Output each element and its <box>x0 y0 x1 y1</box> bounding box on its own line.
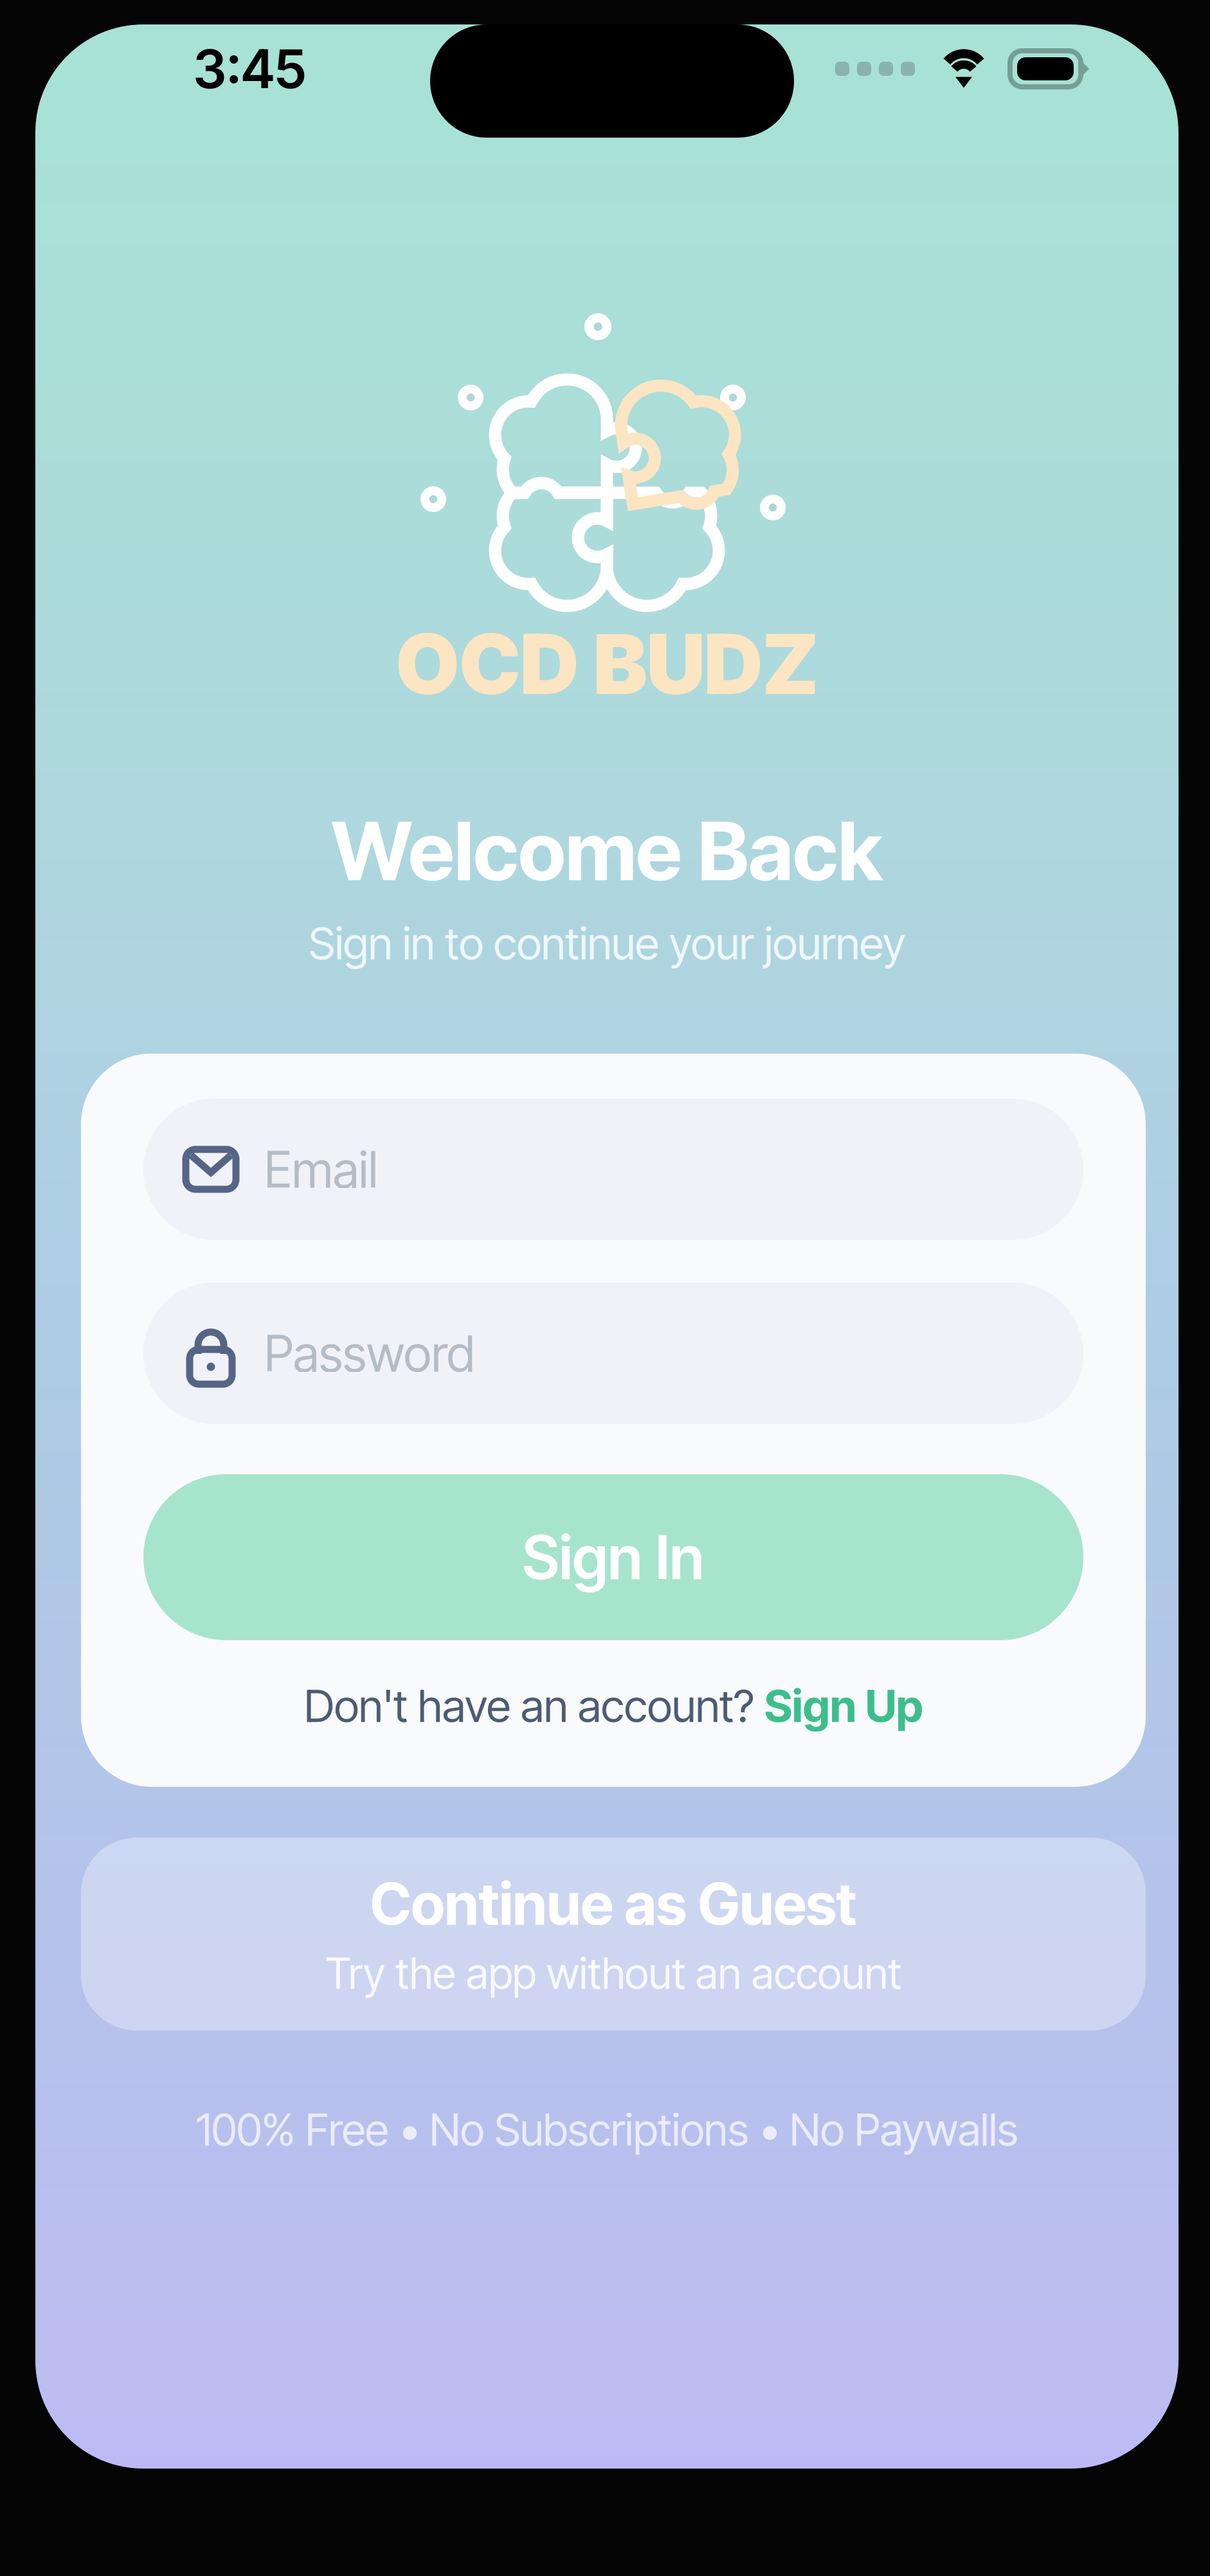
staticText: Continue as Guest <box>370 1869 857 1938</box>
staticText: Try the app without an account <box>325 1947 901 1999</box>
staticText: Sign In <box>522 1521 704 1593</box>
staticText: Sign in to continue your journey <box>309 916 905 970</box>
button[interactable]: Sign In <box>143 1474 1083 1640</box>
staticText: 3:45 <box>194 37 306 101</box>
staticText: Sign Up <box>764 1679 923 1733</box>
button[interactable]: Continue as Guest <box>81 1838 1146 2031</box>
staticText: OCD BUDZ <box>396 614 818 714</box>
button[interactable]: Don't have an account? <box>143 1676 1083 1735</box>
staticText: Email <box>264 1139 378 1199</box>
staticText: 100% Free • No Subscriptions • No Paywal… <box>196 2103 1018 2156</box>
staticText: Password <box>264 1323 474 1383</box>
staticText: Don't have an account? <box>304 1679 764 1733</box>
staticText: Welcome Back <box>331 802 882 900</box>
